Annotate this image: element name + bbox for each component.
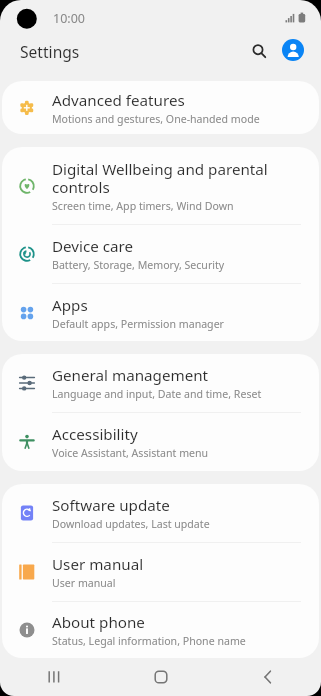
button[interactable]: General management [2, 354, 319, 412]
staticText: Status, Legal information, Phone name [52, 634, 246, 648]
button[interactable]: Account [282, 39, 304, 61]
staticText: User manual [52, 576, 116, 590]
staticText: Advanced features [52, 90, 185, 111]
button[interactable]: Recents [0, 658, 107, 696]
staticText: 10:00 [53, 10, 85, 27]
button[interactable]: Back [214, 658, 321, 696]
staticText: Language and input, Date and time, Reset [52, 387, 262, 401]
button[interactable]: User manual [2, 543, 319, 601]
button[interactable]: Home [107, 658, 214, 696]
button[interactable]: Software update [2, 484, 319, 542]
staticText: Apps [52, 295, 88, 316]
button[interactable]: Search [244, 36, 272, 64]
staticText: About phone [52, 612, 145, 633]
staticText: Default apps, Permission manager [52, 317, 224, 331]
staticText: Device care [52, 236, 134, 257]
staticText: Battery, Storage, Memory, Security [52, 258, 225, 272]
staticText: Voice Assistant, Assistant menu [52, 446, 209, 460]
staticText: General management [52, 365, 209, 386]
staticText: Motions and gestures, One-handed mode [52, 112, 260, 126]
button[interactable]: Accessibility [2, 413, 319, 471]
staticText: User manual [52, 554, 144, 575]
staticText: Settings [20, 41, 80, 62]
button[interactable]: About phone [2, 602, 319, 658]
staticText: Screen time, App timers, Wind Down [52, 199, 234, 213]
button[interactable]: Digital Wellbeing and parental controls [2, 147, 319, 224]
staticText: Accessibility [52, 424, 138, 445]
staticText: Digital Wellbeing and parental controls [52, 159, 268, 198]
staticText: Software update [52, 495, 170, 516]
button[interactable]: Apps [2, 284, 319, 341]
button[interactable]: Advanced features [2, 81, 319, 134]
button[interactable]: Device care [2, 225, 319, 283]
staticText: Download updates, Last update [52, 517, 210, 531]
